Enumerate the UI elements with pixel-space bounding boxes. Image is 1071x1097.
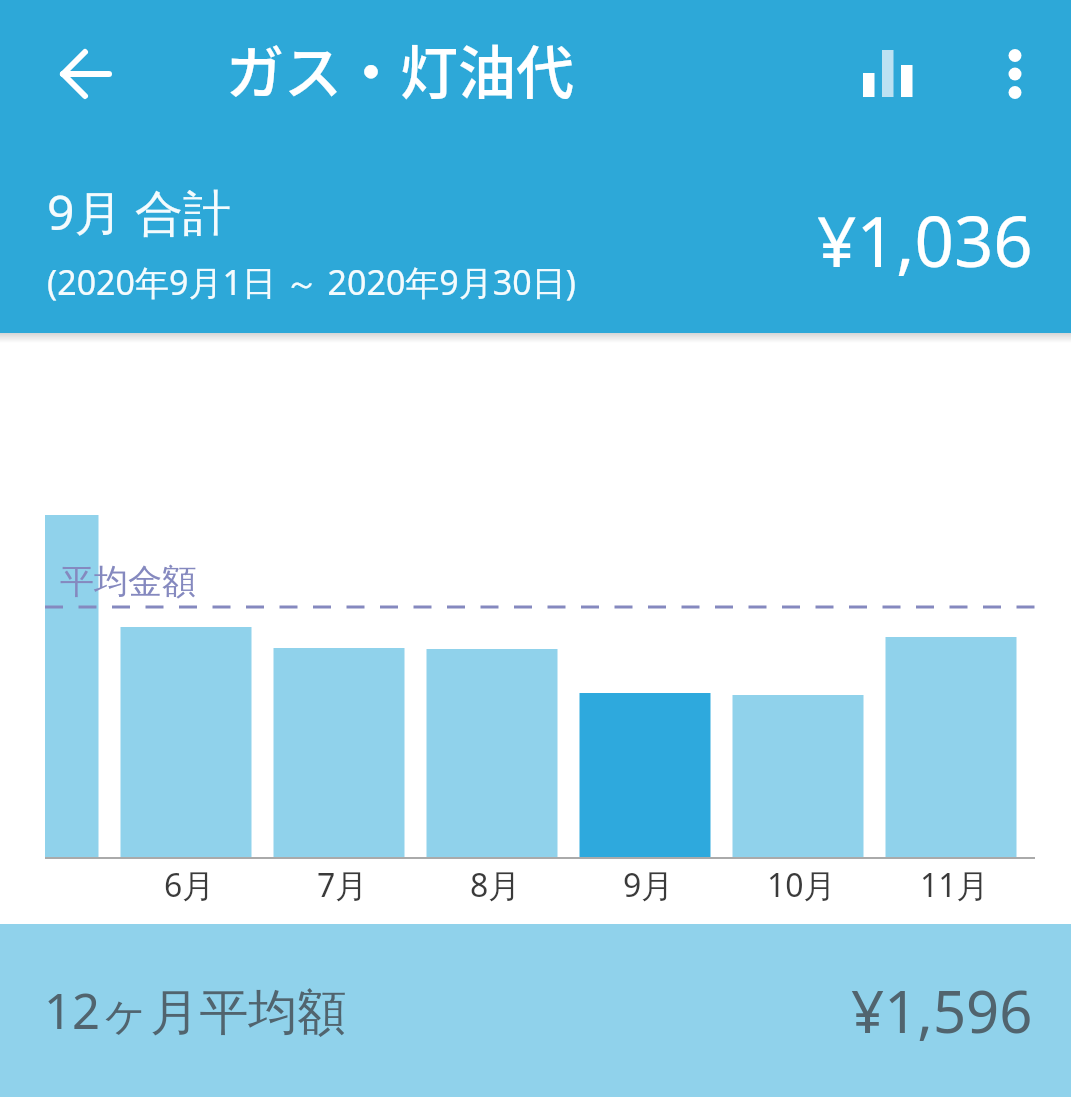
button[interactable]: 12ヶ月平均額 bbox=[0, 924, 1071, 1097]
staticText: 10月 bbox=[767, 863, 836, 907]
button[interactable] bbox=[971, 30, 1059, 118]
staticText: 9月 合計 bbox=[47, 179, 231, 245]
staticText: 6月 bbox=[164, 863, 215, 907]
staticText: 11月 bbox=[920, 863, 989, 907]
button[interactable] bbox=[38, 26, 134, 122]
staticText: 7月 bbox=[317, 863, 368, 907]
staticText: ¥1,036 bbox=[817, 193, 1033, 287]
staticText: 8月 bbox=[470, 863, 521, 907]
staticText: ガス・灯油代 bbox=[226, 27, 575, 111]
staticText: 9月 bbox=[623, 863, 674, 907]
staticText: 12ヶ月平均額 bbox=[44, 977, 347, 1044]
staticText: ¥1,596 bbox=[851, 971, 1033, 1050]
staticText: 平均金額 bbox=[60, 560, 196, 603]
staticText: (2020年9月1日 ～ 2020年9月30日) bbox=[47, 259, 576, 305]
button[interactable] bbox=[840, 26, 936, 122]
